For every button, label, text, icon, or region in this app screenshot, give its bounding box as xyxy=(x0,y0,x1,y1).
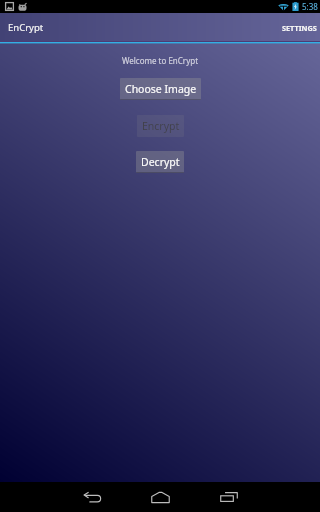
staticText: 5:38 xyxy=(302,1,318,12)
button[interactable]: Home xyxy=(136,482,184,512)
staticText: EnCrypt xyxy=(8,21,44,34)
button[interactable]: Recent apps xyxy=(205,482,253,512)
staticText: Encrypt xyxy=(142,119,180,133)
staticText: SETTINGS xyxy=(282,23,317,33)
staticText: Welcome to EnCrypt xyxy=(122,55,199,66)
staticText: Choose Image xyxy=(125,82,197,96)
button[interactable]: Back xyxy=(68,482,116,512)
button[interactable]: Decrypt xyxy=(136,151,184,173)
button[interactable]: Choose Image xyxy=(120,78,201,100)
button[interactable]: Encrypt xyxy=(137,115,184,137)
staticText: Decrypt xyxy=(141,155,180,169)
button[interactable]: SETTINGS xyxy=(276,13,320,41)
